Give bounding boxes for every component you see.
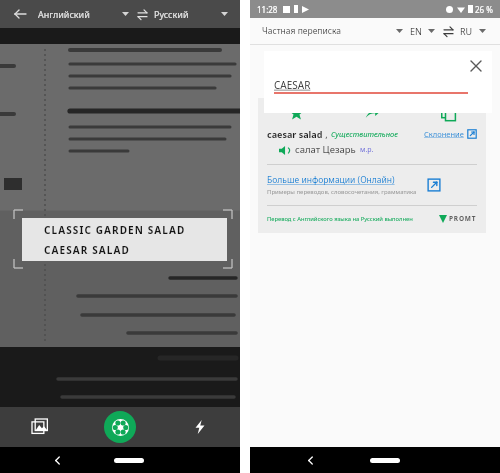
staticText: CAESAR	[274, 78, 311, 92]
staticText: Больше информации (Онлайн)	[267, 174, 395, 186]
button[interactable]: Частная переписка	[262, 25, 342, 37]
staticText: Английский	[38, 8, 90, 20]
button[interactable]: Flash	[160, 407, 240, 447]
staticText: PROMT	[449, 214, 477, 223]
staticText: м.р.	[360, 145, 374, 155]
staticText: Существительное	[331, 129, 398, 139]
staticText: Русский	[154, 8, 189, 20]
staticText: caesar salad	[267, 128, 323, 140]
button[interactable]: Share	[334, 98, 410, 128]
staticText: 11:28	[257, 4, 278, 15]
button[interactable]: Back	[300, 450, 320, 470]
staticText: Примеры переводов, словосочетания, грамм…	[267, 188, 417, 196]
button[interactable]: Swap languages	[135, 7, 149, 21]
staticText: салат Цезарь	[295, 143, 356, 156]
button[interactable]: Target language menu	[218, 8, 230, 20]
button[interactable]: Back	[10, 4, 30, 24]
button[interactable]: Home	[114, 458, 144, 463]
button[interactable]: Source language	[425, 25, 437, 37]
button[interactable]: Favorite	[258, 98, 334, 128]
button[interactable]: Capture	[80, 407, 160, 447]
button[interactable]: Target language	[476, 25, 488, 37]
button[interactable]: Copy	[410, 98, 486, 128]
button[interactable]: EN	[410, 25, 422, 37]
button[interactable]: Back	[47, 450, 67, 470]
button[interactable]: Gallery	[0, 407, 80, 447]
staticText: Перевод с Английского языка на Русский в…	[267, 215, 413, 223]
staticText: ,	[323, 128, 331, 140]
button[interactable]: Source language menu	[119, 8, 131, 20]
button[interactable]: Topic menu	[393, 25, 405, 37]
button[interactable]: Больше информации (Онлайн)	[258, 174, 486, 196]
button[interactable]: Pronounce	[278, 144, 290, 156]
button[interactable]: Clear	[468, 58, 484, 74]
button[interactable]: Home	[370, 458, 400, 463]
staticText: Склонение	[424, 129, 464, 139]
staticText: CLASSIC GARDEN SALAD	[44, 223, 186, 237]
staticText: CAESAR SALAD	[44, 243, 130, 257]
button[interactable]: Swap languages	[442, 25, 455, 38]
staticText: 26 %	[475, 4, 493, 15]
button[interactable]: RU	[460, 25, 473, 37]
button[interactable]: Склонение	[424, 129, 477, 139]
